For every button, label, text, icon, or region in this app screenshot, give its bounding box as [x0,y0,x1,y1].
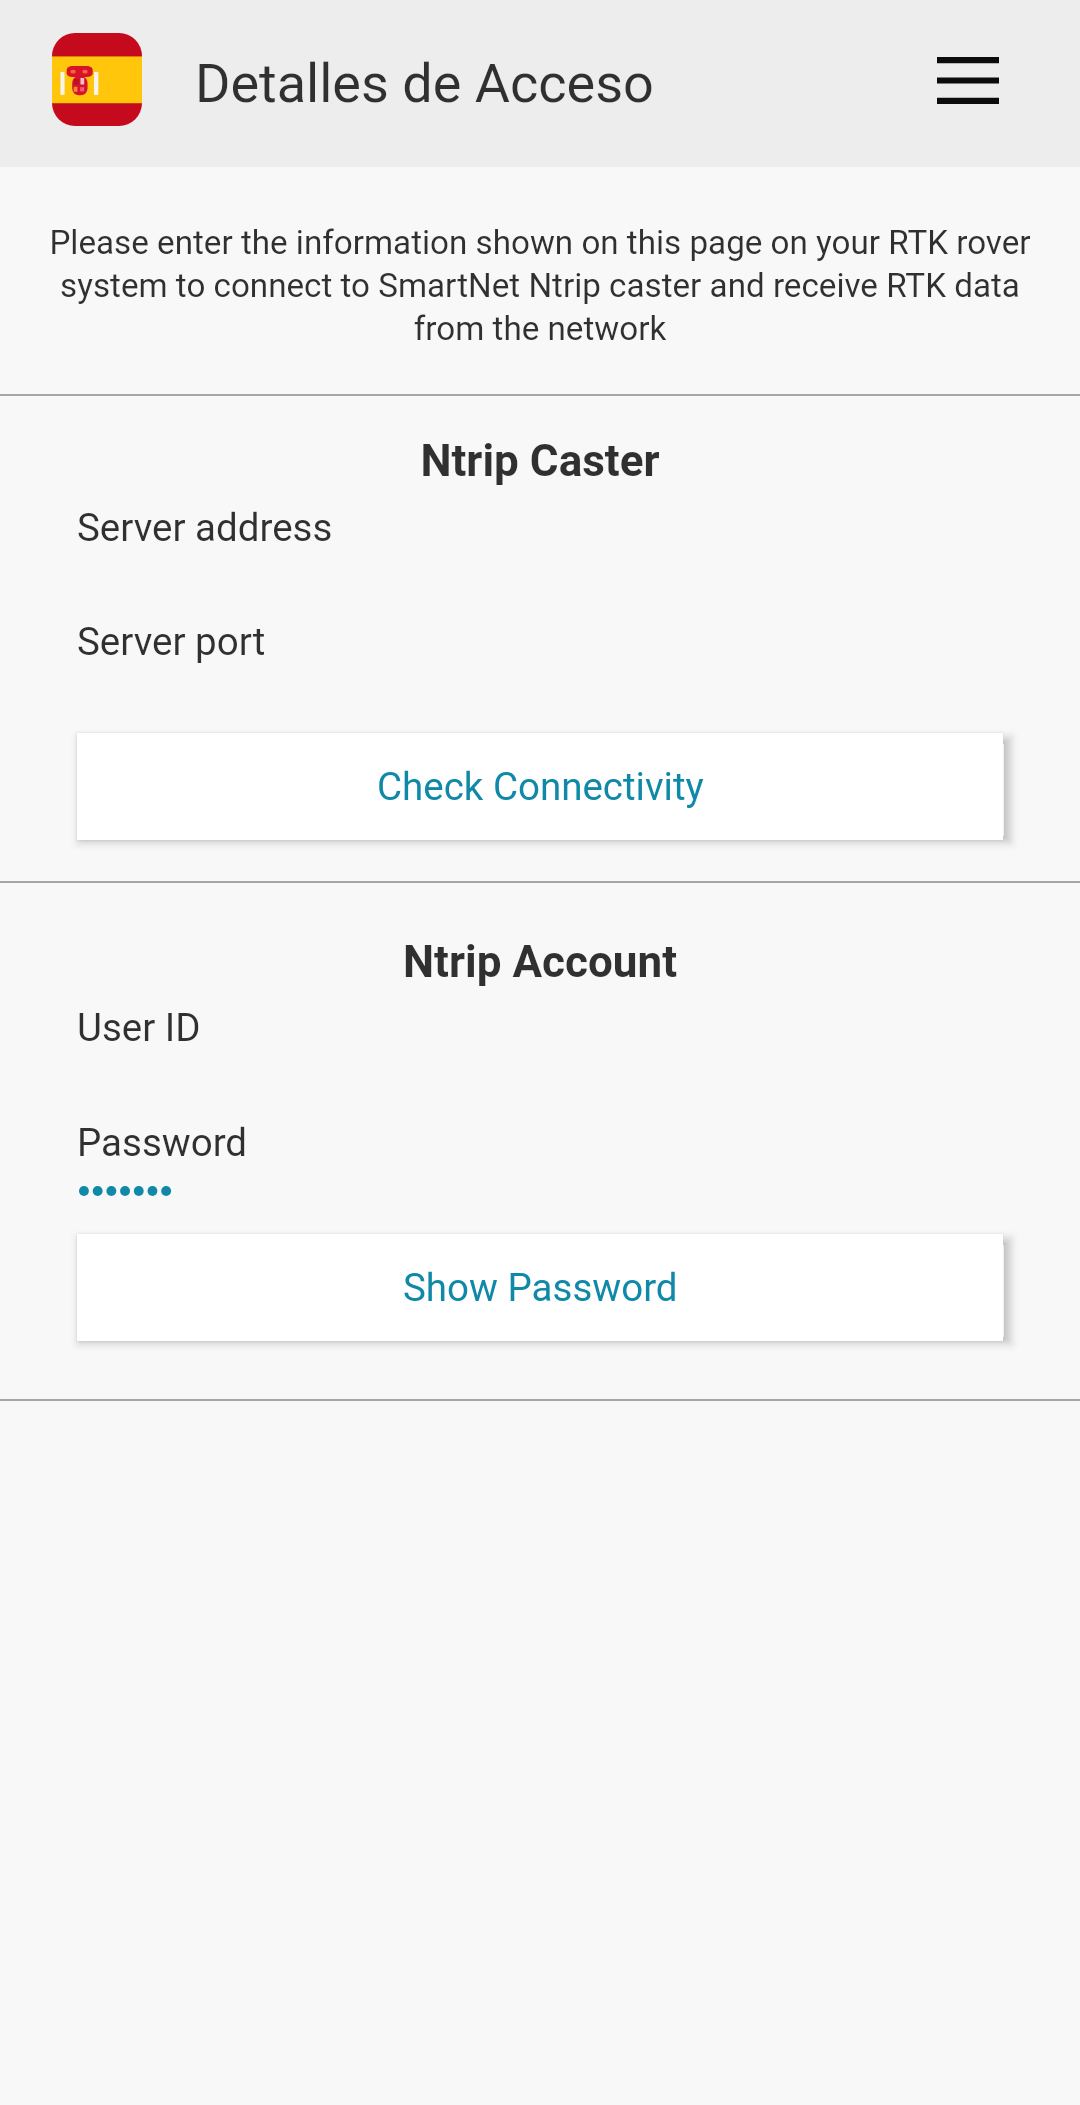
staticText: Detalles de Acceso [195,52,654,115]
button[interactable]: Show Password [77,1234,1003,1341]
button[interactable]: Menu [908,24,1028,144]
staticText: Server port [77,619,266,664]
staticText: Server address [77,505,333,550]
staticText: Ntrip Caster [0,435,1080,487]
staticText: Password [77,1120,248,1165]
staticText: User ID [77,1005,201,1050]
staticText: Check Connectivity [377,764,704,809]
button[interactable]: Check Connectivity [77,733,1003,840]
staticText: Ntrip Account [0,936,1080,988]
staticText: Show Password [403,1265,678,1310]
staticText: Please enter the information shown on th… [38,223,1042,348]
button[interactable]: Language [52,33,142,126]
